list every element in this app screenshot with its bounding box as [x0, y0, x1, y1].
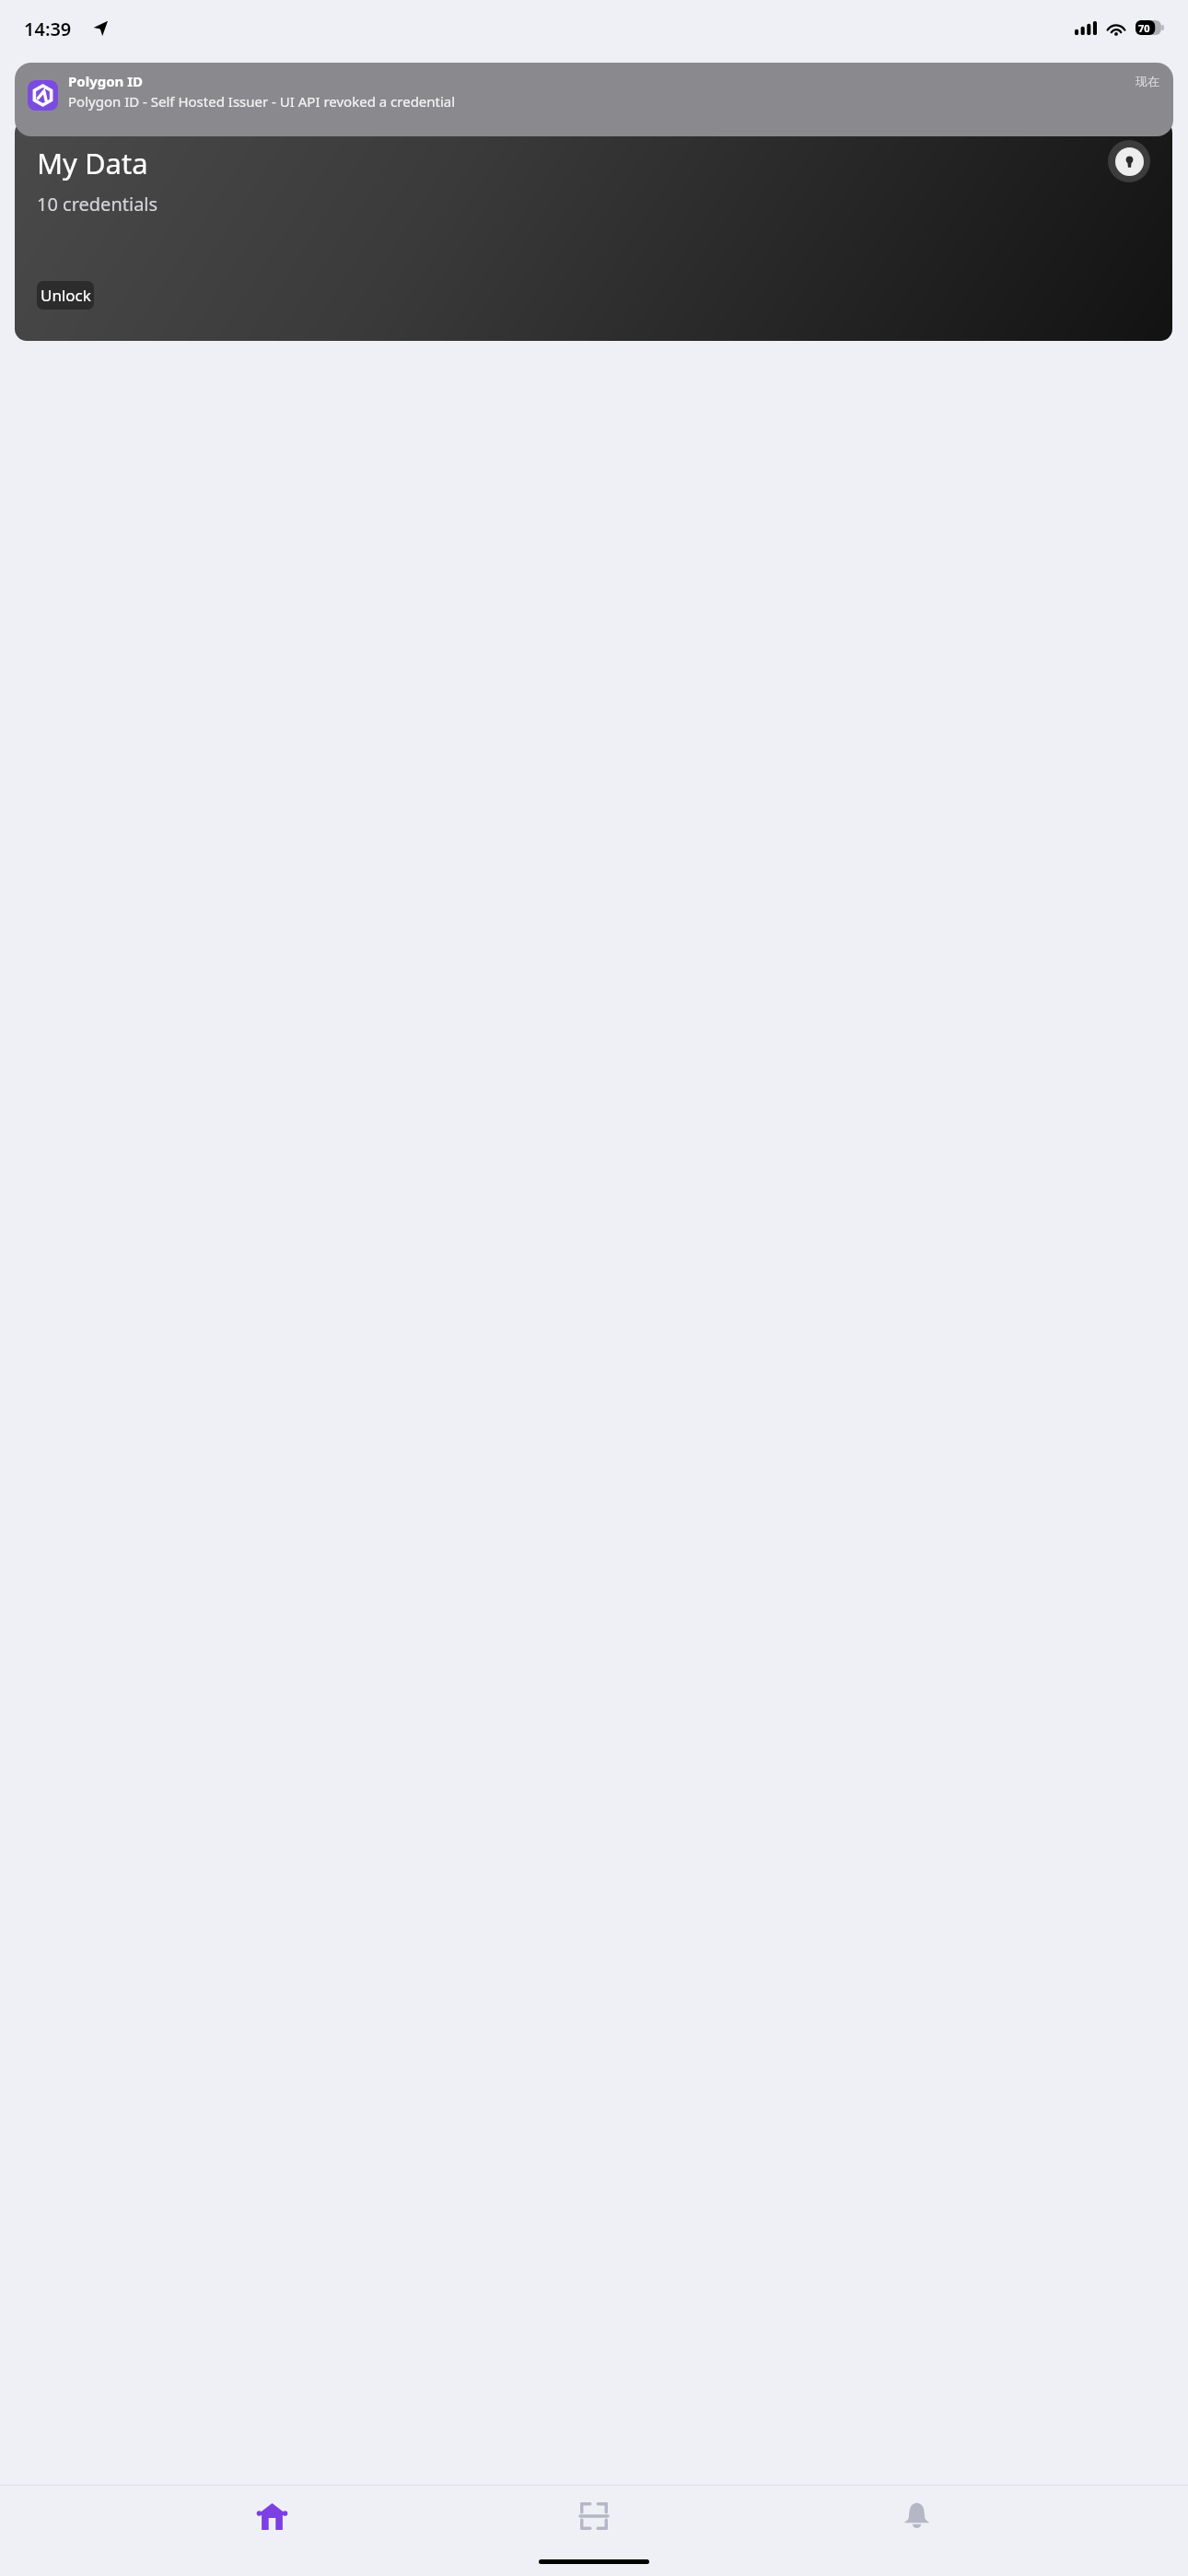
- staticText: Polygon ID - Self Hosted Issuer - UI API…: [68, 92, 456, 111]
- staticText: Unlock: [41, 285, 91, 306]
- button[interactable]: Scan: [543, 2486, 645, 2547]
- staticText: 70: [1138, 21, 1150, 35]
- staticText: 现在: [1136, 74, 1159, 88]
- button[interactable]: Locked: [1108, 140, 1150, 182]
- staticText: 14:39: [24, 17, 72, 41]
- button[interactable]: Notifications: [866, 2486, 967, 2547]
- button[interactable]: My Data: [15, 121, 1172, 341]
- staticText: My Data: [37, 144, 148, 182]
- button[interactable]: Polygon ID: [15, 63, 1173, 136]
- staticText: 10 credentials: [37, 192, 158, 217]
- staticText: Polygon ID: [68, 72, 144, 90]
- button[interactable]: Unlock: [37, 281, 94, 310]
- button[interactable]: Home: [221, 2486, 322, 2547]
